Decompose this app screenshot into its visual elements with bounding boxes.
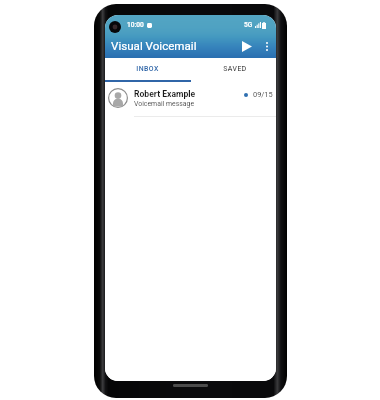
staticText: Visual Voicemail [111,39,197,53]
button[interactable]: INBOX [105,58,190,82]
staticText: Robert Example [134,89,196,99]
staticText: 09/15 [253,90,273,99]
staticText: 10:00 [127,21,144,29]
staticText: 5G [244,21,253,29]
button[interactable]: Robert Example [105,82,276,117]
staticText: Voicemail message [134,100,195,108]
button[interactable]: SAVED [190,58,276,82]
button[interactable]: Play all voicemails [237,36,257,56]
staticText: SAVED [223,65,247,73]
staticText: INBOX [136,65,159,73]
button[interactable]: More options [257,37,276,56]
